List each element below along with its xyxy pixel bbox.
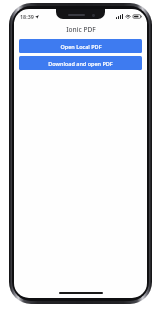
staticText: 18:39 [20, 13, 34, 20]
button[interactable]: Download and open PDF [19, 56, 142, 70]
staticText: Open Local PDF [60, 43, 102, 50]
staticText: Download and open PDF [48, 60, 113, 67]
staticText: Ionic PDF [66, 25, 96, 34]
button[interactable]: Open Local PDF [19, 39, 142, 53]
other: Home indicator [14, 289, 147, 298]
